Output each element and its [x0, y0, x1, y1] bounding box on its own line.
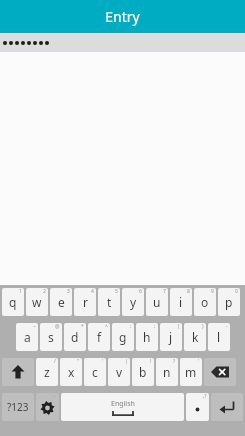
staticText: 4 [91, 288, 94, 295]
button[interactable]: ^ [88, 323, 110, 351]
button[interactable]: ~ [16, 323, 38, 351]
staticText: h [143, 329, 151, 345]
button[interactable]: ; [136, 323, 158, 351]
staticText: t [107, 294, 112, 310]
staticText: v [116, 364, 123, 380]
staticText: ; [154, 323, 156, 330]
staticText: 0 [235, 288, 238, 295]
button[interactable]: 4 [74, 288, 96, 316]
staticText: 7 [163, 288, 166, 295]
staticText: English [111, 399, 135, 409]
button[interactable]: 0 [218, 288, 240, 316]
button[interactable]: ! [132, 358, 154, 386]
staticText: d [71, 329, 79, 345]
staticText: p [225, 294, 233, 310]
staticText: z [44, 364, 50, 380]
staticText: ,? [203, 393, 207, 400]
staticText: ?123 [7, 400, 29, 414]
button[interactable]: 1 [2, 288, 24, 316]
staticText: b [139, 364, 147, 380]
button[interactable]: 7 [146, 288, 168, 316]
button[interactable]: ) [184, 323, 206, 351]
staticText: * [81, 323, 84, 330]
staticText: ' [198, 358, 200, 365]
button[interactable]: 2 [26, 288, 48, 316]
staticText: @ [55, 323, 60, 330]
button[interactable]: ' [84, 358, 106, 386]
staticText: 3 [67, 288, 70, 295]
staticText: ^ [105, 323, 108, 330]
button[interactable]: @ [40, 323, 62, 351]
button[interactable]: 8 [170, 288, 192, 316]
button[interactable]: Space [61, 393, 184, 421]
button[interactable]: ' [180, 358, 202, 386]
staticText: | [125, 358, 128, 365]
staticText: s [48, 329, 54, 345]
staticText: 8 [187, 288, 190, 295]
staticText: m [185, 364, 197, 380]
button[interactable]: : [112, 323, 134, 351]
staticText: : [130, 323, 132, 330]
button[interactable]: * [64, 323, 86, 351]
staticText: a [24, 329, 31, 345]
staticText: r [83, 294, 88, 310]
staticText: - [226, 323, 228, 330]
button[interactable]: Settings [36, 393, 59, 421]
staticText: x [68, 364, 75, 380]
button[interactable]: Symbols [2, 393, 34, 421]
button[interactable]: Shift [2, 358, 34, 386]
staticText: ? [173, 358, 176, 365]
staticText: 2 [43, 288, 46, 295]
staticText: n [163, 364, 171, 380]
staticText: q [9, 294, 17, 310]
button[interactable]: 5 [98, 288, 120, 316]
button[interactable] [0, 33, 245, 52]
staticText: k [192, 329, 199, 345]
staticText: c [92, 364, 98, 380]
staticText: y [130, 294, 137, 310]
staticText: 5 [115, 288, 118, 295]
staticText: Entry [105, 7, 140, 26]
staticText: f [97, 329, 102, 345]
staticText: ··· [52, 393, 57, 400]
staticText: l [217, 329, 221, 345]
button[interactable]: 3 [50, 288, 72, 316]
staticText: o [201, 294, 209, 310]
button[interactable]: / [36, 358, 58, 386]
button[interactable]: " [60, 358, 82, 386]
staticText: ~ [33, 323, 36, 330]
button[interactable]: Period [186, 393, 209, 421]
staticText: i [179, 294, 183, 310]
staticText: g [119, 329, 127, 345]
button[interactable]: ( [160, 323, 182, 351]
staticText: 1 [19, 288, 22, 295]
staticText: ( [178, 323, 180, 330]
staticText: ) [202, 323, 204, 330]
button[interactable]: 6 [122, 288, 144, 316]
button[interactable]: Backspace [204, 358, 236, 386]
staticText: ' [102, 358, 104, 365]
staticText: w [32, 294, 42, 310]
staticText: 9 [211, 288, 214, 295]
staticText: j [169, 329, 173, 345]
staticText: 6 [139, 288, 142, 295]
button[interactable]: - [208, 323, 230, 351]
staticText: " [77, 358, 80, 365]
button[interactable]: Enter [211, 393, 243, 421]
staticText: / [54, 358, 56, 365]
button[interactable]: | [108, 358, 130, 386]
button[interactable]: ? [156, 358, 178, 386]
button[interactable]: 9 [194, 288, 216, 316]
staticText: e [58, 294, 65, 310]
staticText: u [153, 294, 161, 310]
staticText: ! [150, 358, 152, 365]
